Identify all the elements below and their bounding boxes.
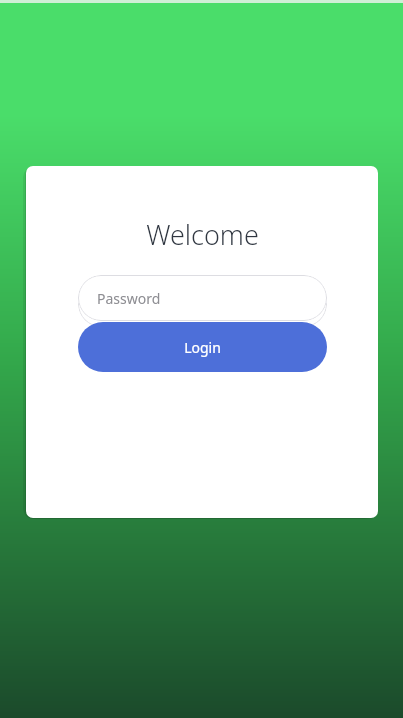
button[interactable]: Password <box>78 275 327 321</box>
button[interactable]: Enter Email Address... <box>78 281 327 327</box>
staticText: Welcome <box>146 216 259 253</box>
staticText: Login <box>184 338 221 357</box>
staticText: Enter Email Address... <box>97 295 240 314</box>
staticText: Password <box>97 289 161 308</box>
button[interactable]: Login <box>78 322 327 372</box>
